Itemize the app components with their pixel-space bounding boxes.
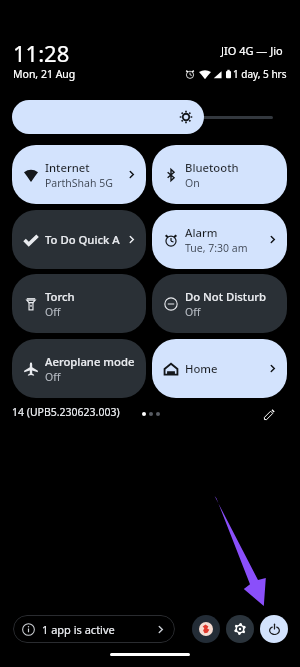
button[interactable]: Do Not Disturb bbox=[152, 274, 287, 333]
staticText: Torch bbox=[45, 289, 75, 304]
staticText: Off bbox=[185, 305, 201, 319]
staticText: ParthShah 5G bbox=[45, 176, 113, 190]
button[interactable]: Settings bbox=[226, 615, 254, 643]
staticText: Aeroplane mode bbox=[45, 354, 135, 369]
staticText: 1 app is active bbox=[42, 622, 115, 637]
button[interactable]: Aeroplane mode bbox=[12, 339, 146, 398]
button[interactable]: Internet bbox=[12, 145, 146, 204]
staticText: Internet bbox=[45, 160, 90, 175]
staticText: 11:28 bbox=[13, 38, 70, 68]
button[interactable]: Power bbox=[260, 615, 288, 643]
staticText: Bluetooth bbox=[185, 160, 239, 175]
button[interactable]: 1 app is active bbox=[13, 615, 175, 643]
staticText: 14 (UPB5.230623.003) bbox=[12, 405, 120, 419]
staticText: Tue, 7:30 am bbox=[185, 241, 248, 255]
staticText: 1 day, 5 hrs bbox=[233, 67, 287, 81]
button[interactable]: Brightness bbox=[12, 100, 204, 134]
staticText: Alarm bbox=[185, 225, 218, 240]
staticText: On bbox=[185, 176, 200, 190]
staticText: Home bbox=[185, 361, 218, 376]
button[interactable]: Torch bbox=[12, 274, 146, 333]
button[interactable]: Edit bbox=[258, 403, 280, 425]
button[interactable]: To Do Quick A bbox=[12, 210, 146, 269]
button[interactable]: User account bbox=[192, 615, 220, 643]
staticText: Mon, 21 Aug bbox=[13, 67, 76, 81]
button[interactable]: Bluetooth bbox=[152, 145, 287, 204]
button[interactable]: Home bbox=[152, 339, 287, 398]
button[interactable]: Alarm bbox=[152, 210, 287, 269]
staticText: Off bbox=[45, 305, 61, 319]
staticText: JIO 4G — Jio bbox=[221, 43, 283, 58]
staticText: Do Not Disturb bbox=[185, 289, 267, 304]
staticText: Off bbox=[45, 370, 61, 384]
staticText: To Do Quick A bbox=[45, 232, 120, 247]
